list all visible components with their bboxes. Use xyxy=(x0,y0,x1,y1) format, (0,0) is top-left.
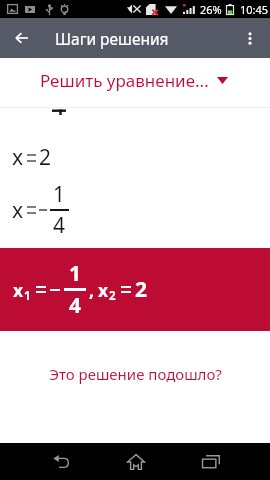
button[interactable]: More options xyxy=(230,18,270,58)
staticText: 4 xyxy=(53,211,66,240)
staticText: Это решение подошло? xyxy=(49,364,222,384)
staticText: Шаги решения xyxy=(55,28,169,49)
staticText: 2 xyxy=(39,143,52,172)
staticText: 1 xyxy=(53,180,66,209)
button[interactable]: Это решение подошло? xyxy=(0,362,270,386)
button[interactable]: Recent apps xyxy=(189,443,233,480)
staticText: 26% xyxy=(200,2,222,17)
staticText: 4 xyxy=(69,291,82,320)
staticText: x xyxy=(12,196,24,225)
staticText: 1 xyxy=(69,259,82,288)
button[interactable]: x xyxy=(0,248,270,331)
button[interactable]: Back xyxy=(1,18,41,58)
staticText: 10:45 xyxy=(240,2,269,17)
staticText: Решить уравнение... xyxy=(40,69,209,92)
button[interactable]: Решить уравнение... xyxy=(0,55,270,105)
staticText: , xyxy=(89,278,94,302)
staticText: 2 xyxy=(135,275,148,304)
staticText: x xyxy=(98,278,109,302)
staticText: 2 xyxy=(109,288,116,304)
staticText: x xyxy=(13,278,24,302)
staticText: x xyxy=(12,143,24,172)
button[interactable]: Home xyxy=(114,443,158,480)
button[interactable]: Back xyxy=(39,443,83,480)
staticText: 1 xyxy=(24,288,31,304)
